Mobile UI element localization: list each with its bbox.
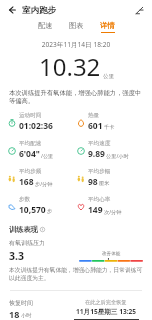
staticText: 本次训练提升有氧体能，增强心肺能力，日常训练可以此强度为主。 (9, 266, 143, 282)
button[interactable]: 运动时间 (7, 112, 53, 132)
button[interactable]: 训练表现 (9, 225, 45, 234)
staticText: 次/分钟 (104, 208, 122, 215)
button[interactable]: 详情 (98, 20, 117, 34)
staticText: 步数 (19, 196, 31, 203)
staticText: 运动时间 (19, 112, 42, 119)
staticText: 热量 (88, 112, 100, 119)
staticText: 18 (9, 308, 20, 320)
button[interactable]: 图表 (67, 20, 86, 34)
staticText: 平均心率 (88, 196, 111, 203)
button[interactable]: 配速 (36, 20, 55, 34)
staticText: 2023年11月14日 18:20 (0, 40, 152, 49)
staticText: 平均速度 (88, 140, 111, 147)
button[interactable]: 平均速度 (76, 140, 129, 160)
staticText: 在此之后完全恢复 (85, 299, 127, 306)
staticText: 训练表现 (9, 225, 38, 234)
staticText: 6'04" (19, 148, 40, 160)
staticText: 149 (88, 204, 103, 216)
staticText: /公里 (41, 152, 54, 159)
button[interactable]: 平均步幅 (76, 168, 111, 188)
staticText: 10.32 (39, 50, 101, 83)
staticText: 3.3 (9, 249, 24, 263)
staticText: 小时 (21, 312, 32, 319)
staticText: 10,570 (19, 204, 46, 216)
button[interactable]: 平均配速 (7, 140, 54, 160)
staticText: 平均步频 (19, 168, 42, 175)
staticText: 恢复时间 (9, 299, 33, 307)
staticText: 98 (88, 176, 98, 188)
staticText: 室内跑步 (22, 5, 56, 16)
staticText: 01:02:36 (19, 120, 53, 132)
staticText: 图表 (69, 21, 84, 30)
button[interactable]: 步数 (7, 196, 53, 216)
staticText: 9.89 (88, 148, 105, 160)
staticText: 改善体能 (102, 251, 121, 257)
staticText: 11月15星期三 13:25 (76, 307, 137, 316)
staticText: 公里 (103, 73, 114, 80)
staticText: 厘米 (99, 180, 110, 187)
button[interactable]: 平均步频 (7, 168, 53, 188)
staticText: 平均配速 (19, 140, 42, 147)
staticText: 本次训练提升有氧体能，增强心肺能力，强度中等偏高。 (9, 89, 143, 105)
button[interactable]: Share (131, 2, 147, 18)
staticText: 详情 (100, 21, 115, 30)
button[interactable]: 平均心率 (76, 196, 122, 216)
staticText: 有氧训练压力 (9, 239, 45, 247)
staticText: 步 (47, 208, 53, 215)
staticText: 步/分钟 (35, 180, 53, 187)
staticText: 公里/小时 (106, 152, 129, 159)
staticText: 168 (19, 176, 34, 188)
staticText: 配速 (38, 21, 53, 30)
staticText: 601 (88, 120, 103, 132)
staticText: 平均步幅 (88, 168, 111, 175)
button[interactable]: 热量 (76, 112, 115, 132)
button[interactable]: Back (4, 2, 20, 18)
staticText: 千卡 (104, 124, 115, 131)
